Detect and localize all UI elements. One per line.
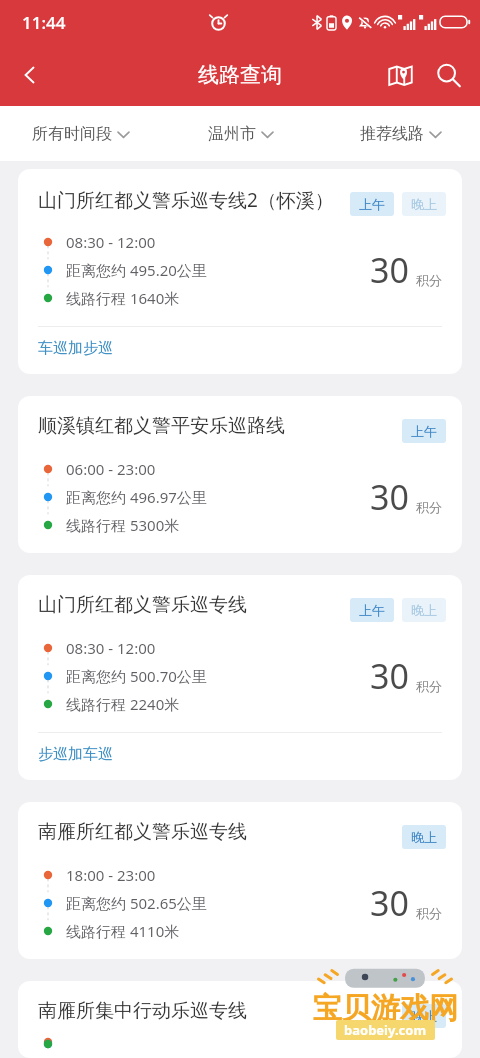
staticText: 06:00 - 23:00 <box>66 459 156 479</box>
button[interactable]: 推荐线路 <box>320 106 480 161</box>
staticText: 晚上 <box>411 602 437 618</box>
staticText: 晚上 <box>411 829 437 845</box>
button[interactable]: Search <box>424 51 472 99</box>
button[interactable]: Back <box>6 51 54 99</box>
staticText: 步巡加车巡 <box>38 745 113 764</box>
button[interactable]: 晚上 <box>402 1004 446 1028</box>
staticText: 山门所红都义警乐巡专线2（怀溪） <box>38 187 334 213</box>
staticText: baobeiy.com <box>344 1021 427 1039</box>
staticText: 积分 <box>416 678 442 694</box>
button[interactable]: 晚上 <box>402 598 446 622</box>
staticText: 上午 <box>411 423 437 439</box>
button[interactable]: 山门所红都义警乐巡专线 <box>18 575 462 780</box>
button[interactable]: Map <box>376 51 424 99</box>
staticText: 南雁所集中行动乐巡专线 <box>38 999 247 1023</box>
staticText: 距离您约 500.70公里 <box>66 666 207 686</box>
staticText: 所有时间段 <box>32 124 112 144</box>
staticText: 线路行程 4110米 <box>66 921 180 941</box>
staticText: 积分 <box>416 499 442 515</box>
staticText: 08:30 - 12:00 <box>66 232 156 252</box>
staticText: 08:30 - 12:00 <box>66 638 156 658</box>
button[interactable]: 山门所红都义警乐巡专线2（怀溪） <box>18 169 462 374</box>
staticText: 南雁所红都义警乐巡专线 <box>38 820 247 844</box>
staticText: 线路查询 <box>198 62 282 88</box>
staticText: 距离您约 496.97公里 <box>66 487 207 507</box>
staticText: 宝贝游戏网 <box>313 990 458 1027</box>
staticText: 线路行程 1640米 <box>66 288 180 308</box>
staticText: 晚上 <box>411 196 437 212</box>
button[interactable]: 步巡加车巡 <box>18 733 462 780</box>
button[interactable]: 晚上 <box>402 825 446 849</box>
staticText: 距离您约 502.65公里 <box>66 893 207 913</box>
staticText: 车巡加步巡 <box>38 339 113 358</box>
staticText: 11:44 <box>22 11 66 34</box>
staticText: 上午 <box>359 196 385 212</box>
staticText: 30 <box>370 247 409 293</box>
button[interactable]: 上午 <box>350 598 394 622</box>
button[interactable]: 所有时间段 <box>0 106 160 161</box>
staticText: 30 <box>370 880 409 926</box>
button[interactable]: 上午 <box>350 192 394 216</box>
staticText: 线路行程 2240米 <box>66 694 180 714</box>
button[interactable]: 温州市 <box>160 106 320 161</box>
staticText: 推荐线路 <box>360 124 424 144</box>
button[interactable]: 上午 <box>402 419 446 443</box>
staticText: 30 <box>370 474 409 520</box>
button[interactable]: 车巡加步巡 <box>18 327 462 374</box>
staticText: 温州市 <box>208 124 256 144</box>
staticText: 线路行程 5300米 <box>66 515 180 535</box>
staticText: 晚上 <box>411 1008 437 1024</box>
button[interactable]: 南雁所集中行动乐巡专线 <box>18 981 462 1058</box>
staticText: 上午 <box>359 602 385 618</box>
button[interactable]: 顺溪镇红都义警平安乐巡路线 <box>18 396 462 553</box>
staticText: 18:00 - 23:00 <box>66 865 156 885</box>
staticText: 距离您约 495.20公里 <box>66 260 207 280</box>
button[interactable]: 晚上 <box>402 192 446 216</box>
button[interactable]: 南雁所红都义警乐巡专线 <box>18 802 462 959</box>
staticText: 积分 <box>416 272 442 288</box>
staticText: 30 <box>370 653 409 699</box>
staticText: 顺溪镇红都义警平安乐巡路线 <box>38 414 285 438</box>
staticText: 积分 <box>416 905 442 921</box>
staticText: 山门所红都义警乐巡专线 <box>38 593 247 617</box>
